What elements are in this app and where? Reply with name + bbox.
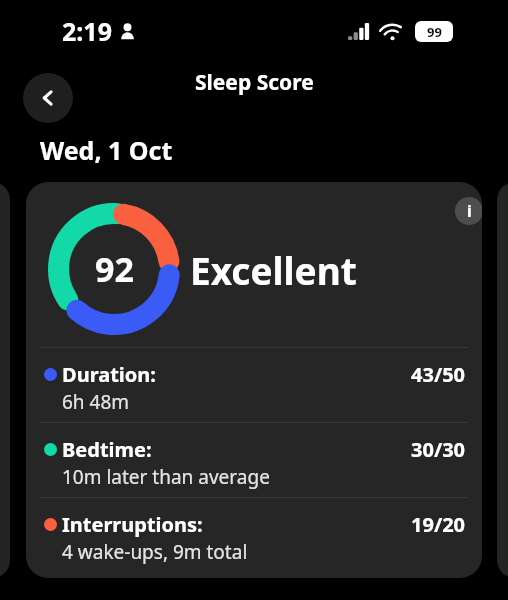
button[interactable]: Interruptions: [26, 497, 482, 572]
staticText: 10m later than average [62, 464, 270, 490]
staticText: 4 wake-ups, 9m total [62, 539, 248, 565]
staticText: 2:19 [62, 14, 112, 48]
button[interactable]: Back [23, 73, 73, 123]
button[interactable]: Information [447, 189, 482, 233]
staticText: Sleep Score [195, 68, 314, 97]
button[interactable]: Duration: [26, 347, 482, 422]
staticText: 6h 48m [62, 389, 130, 415]
staticText: Interruptions: [62, 511, 203, 538]
staticText: 92 [95, 246, 134, 292]
staticText: Duration: [62, 361, 156, 388]
button[interactable]: Bedtime: [26, 422, 482, 497]
staticText: 43/50 [411, 361, 466, 388]
staticText: i [467, 200, 472, 222]
staticText: 99 [427, 23, 442, 41]
staticText: 19/20 [411, 511, 466, 538]
staticText: Excellent [190, 245, 357, 295]
staticText: Bedtime: [62, 436, 152, 463]
staticText: Wed, 1 Oct [40, 133, 173, 167]
staticText: 30/30 [411, 436, 466, 463]
